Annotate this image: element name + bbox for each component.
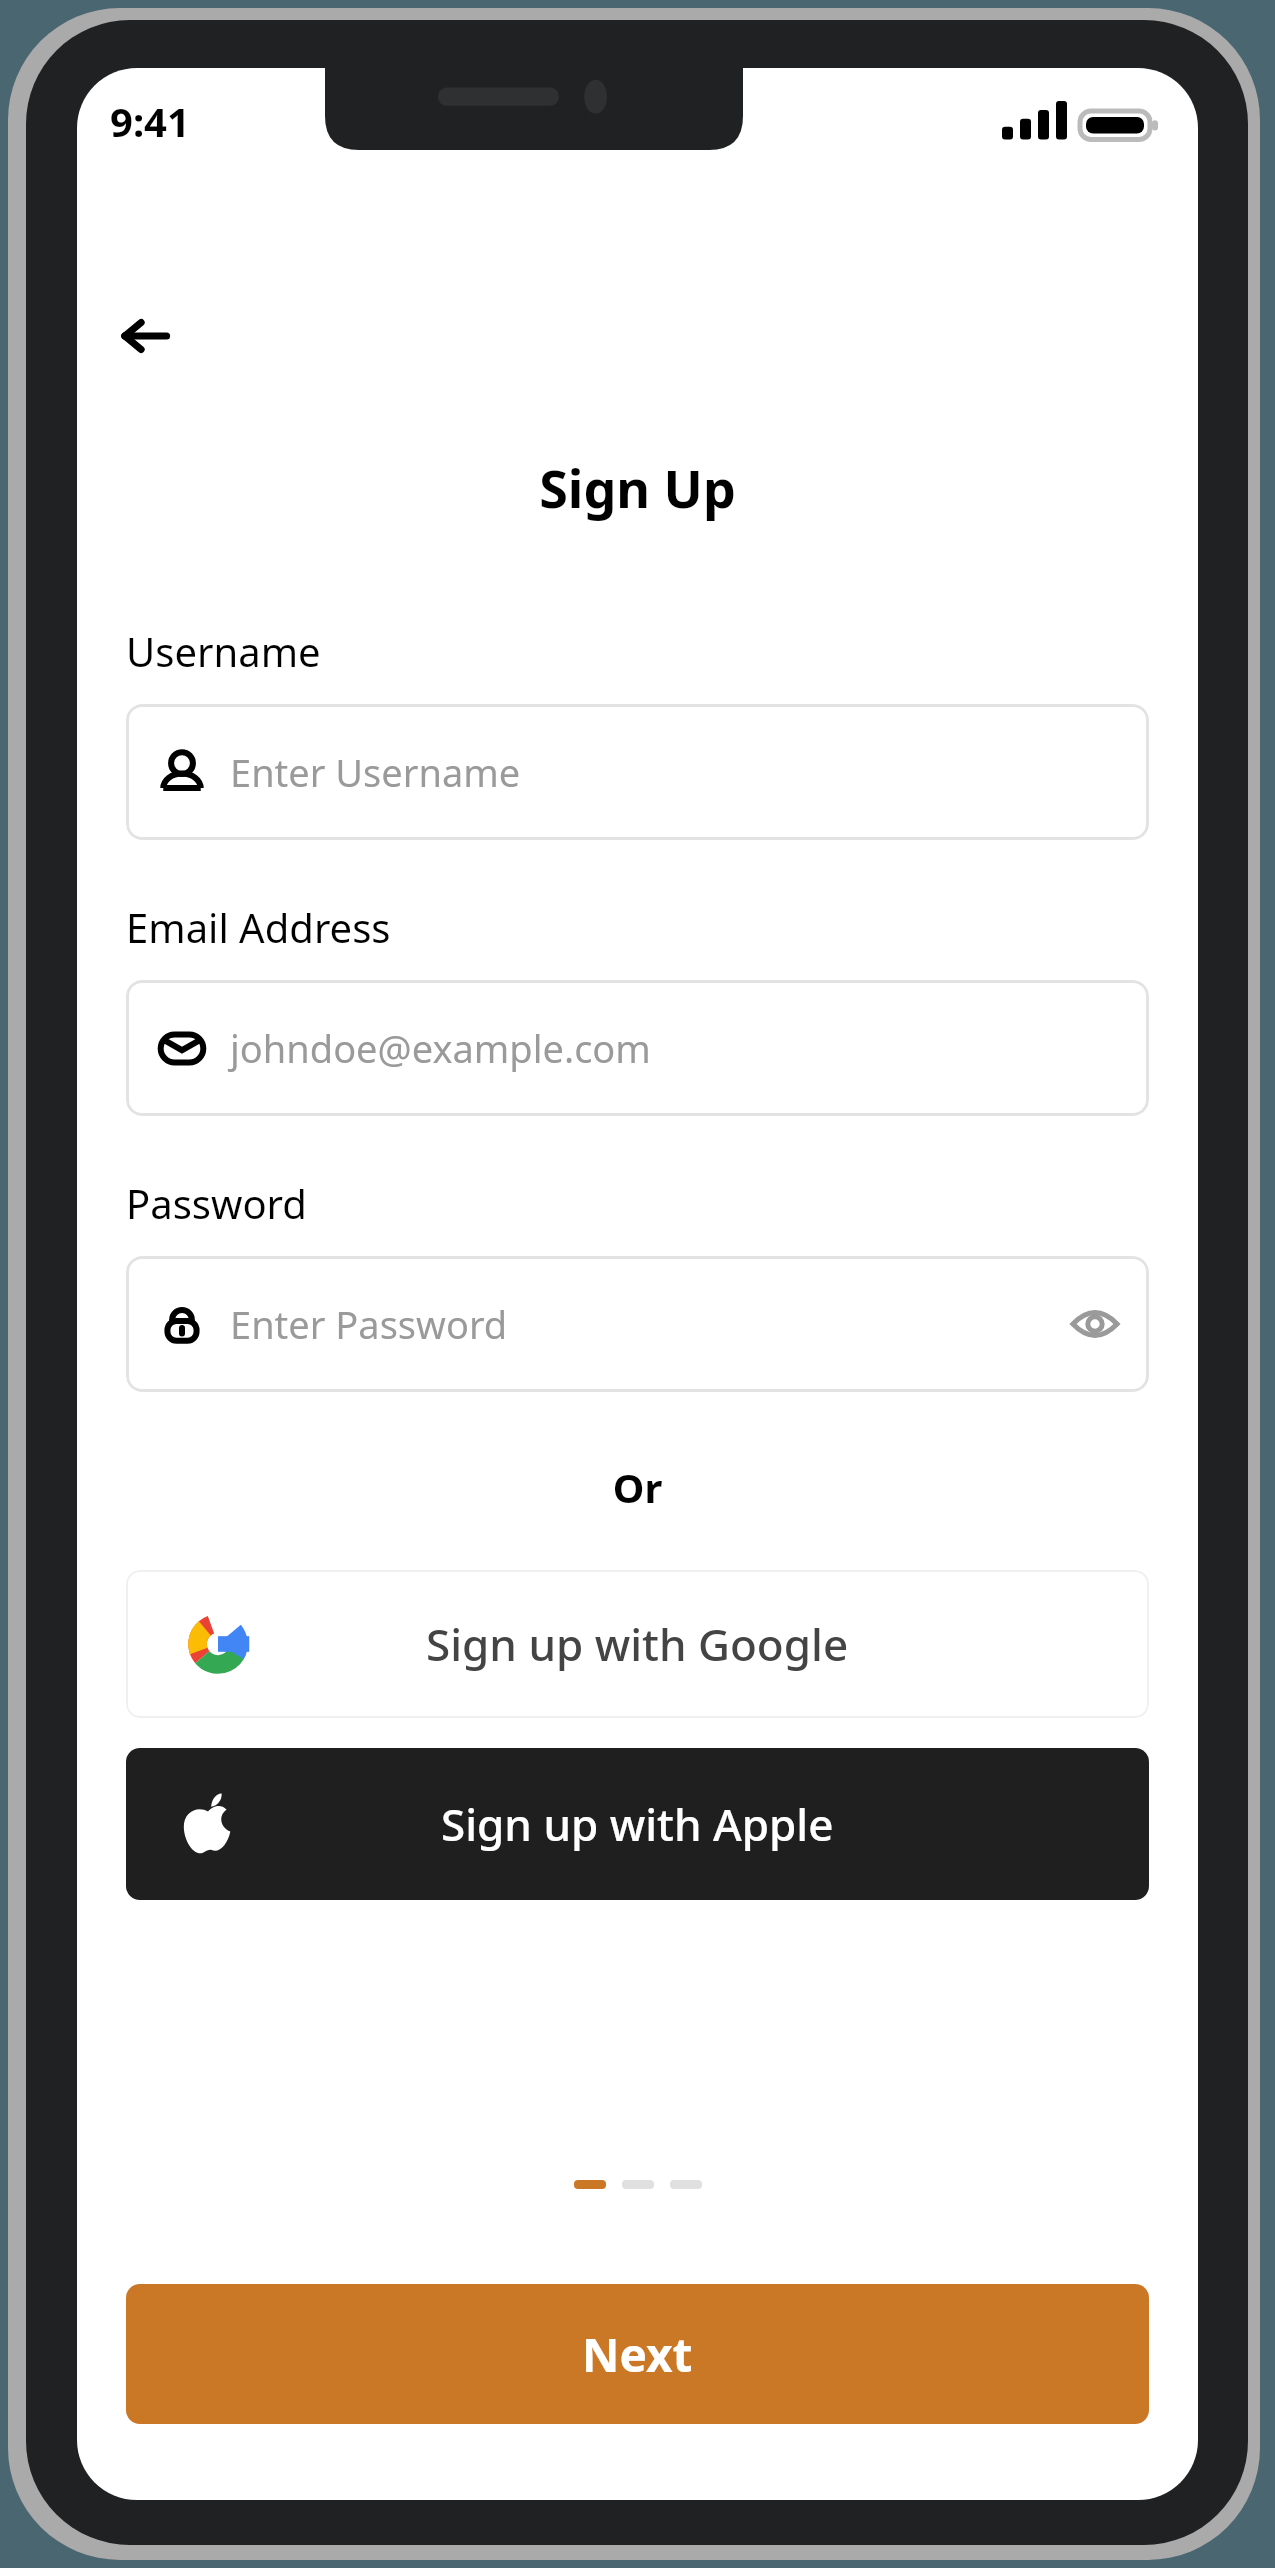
staticText: Enter Password — [230, 1298, 508, 1350]
button[interactable]: johndoe@example.com — [126, 980, 1149, 1116]
staticText: Username — [126, 624, 321, 678]
staticText: johndoe@example.com — [230, 1022, 651, 1074]
button[interactable]: Show password — [1067, 1296, 1123, 1352]
button[interactable]: Next — [126, 2284, 1149, 2424]
button[interactable]: Enter Username — [126, 704, 1149, 840]
staticText: Or — [126, 1460, 1149, 1514]
staticText: Password — [126, 1176, 307, 1230]
staticText: Enter Username — [230, 746, 521, 798]
staticText: Email Address — [126, 900, 391, 954]
staticText: Sign up with Apple — [441, 1794, 834, 1854]
staticText: Sign up with Google — [426, 1614, 849, 1674]
button[interactable]: Back — [97, 288, 193, 384]
button[interactable]: Sign up with Apple — [126, 1748, 1149, 1900]
button[interactable]: Enter Password — [126, 1256, 1149, 1392]
staticText: Next — [582, 2323, 693, 2386]
staticText: 9:41 — [110, 94, 190, 148]
button[interactable]: Sign up with Google — [126, 1570, 1149, 1718]
staticText: Sign Up — [77, 452, 1198, 523]
